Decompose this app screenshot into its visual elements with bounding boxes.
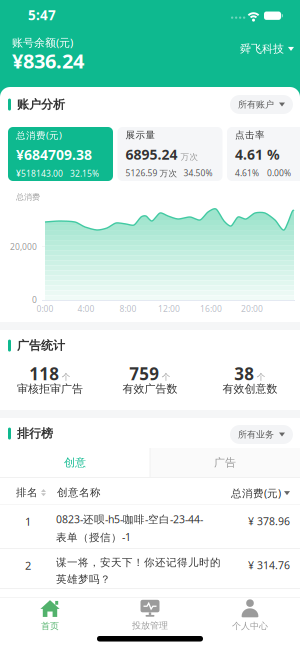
staticText: 个: [62, 371, 71, 382]
staticText: 广告统计: [17, 338, 65, 353]
button[interactable]: 所有账户: [230, 95, 293, 114]
staticText: 账户分析: [17, 97, 65, 112]
staticText: 审核拒审广告: [17, 382, 83, 396]
staticText: 0: [32, 294, 37, 306]
staticText: 16:00: [200, 303, 222, 315]
button[interactable]: 广告: [150, 448, 300, 477]
staticText: 排行榜: [17, 426, 53, 441]
staticText: 0823-还呗-h5-咖啡-空白-23-44-: [56, 512, 203, 526]
staticText: 点击率: [235, 129, 265, 141]
staticText: ¥836.24: [12, 47, 84, 74]
button[interactable]: 2: [0, 549, 300, 593]
staticText: 5126.59 万次 34.50%: [125, 167, 212, 179]
staticText: 展示量: [125, 129, 155, 141]
staticText: 32.15%: [70, 168, 99, 179]
staticText: 账号余额(元): [12, 35, 73, 50]
staticText: 0:00: [36, 303, 53, 315]
staticText: 所有账户: [238, 99, 274, 110]
button[interactable]: 展示量: [117, 127, 222, 181]
staticText: 总消费(元): [231, 486, 281, 500]
staticText: ¥684709.38: [16, 145, 92, 164]
staticText: 创意名称: [57, 486, 101, 499]
staticText: 广告: [214, 456, 236, 469]
staticText: 投放管理: [132, 620, 168, 631]
staticText: 舜飞科技: [240, 42, 284, 56]
staticText: ¥ 378.96: [248, 514, 290, 528]
button[interactable]: 创意: [0, 448, 150, 477]
staticText: 总消费(元): [16, 129, 62, 142]
button[interactable]: 总消费(元): [8, 127, 113, 181]
staticText: 20,000: [10, 241, 37, 253]
staticText: 759: [129, 362, 159, 385]
staticText: 首页: [41, 620, 59, 632]
staticText: 排名: [16, 486, 38, 499]
staticText: 个人中心: [232, 620, 268, 632]
staticText: 总消费: [16, 192, 40, 202]
staticText: 12:00: [158, 303, 180, 315]
staticText: 个: [257, 371, 266, 382]
button[interactable]: 投放管理: [100, 599, 200, 632]
staticText: ¥ 314.76: [248, 558, 290, 572]
button[interactable]: 1: [0, 505, 300, 548]
staticText: 英雄梦吗？: [56, 573, 111, 586]
staticText: 表单（授信）-1: [56, 530, 131, 544]
button[interactable]: 总消费(元): [231, 486, 290, 500]
staticText: 所有业务: [238, 429, 274, 440]
staticText: 万次: [180, 151, 198, 162]
staticText: 谋一将，安天下！你还记得儿时的: [56, 556, 221, 569]
staticText: 个: [162, 371, 171, 382]
staticText: ¥518143.00: [16, 168, 63, 179]
staticText: 1: [25, 514, 31, 529]
staticText: 8:00: [119, 303, 136, 315]
staticText: 118: [29, 362, 59, 385]
staticText: 4.61% 0.00%: [235, 167, 291, 179]
staticText: 38: [234, 362, 254, 385]
button[interactable]: 舜飞科技: [240, 42, 294, 56]
staticText: 4:00: [77, 303, 94, 315]
button[interactable]: 点击率: [227, 127, 300, 181]
staticText: 2: [25, 558, 31, 573]
button[interactable]: 所有业务: [230, 425, 293, 444]
staticText: 创意: [64, 456, 86, 469]
staticText: 有效广告数: [122, 382, 177, 396]
staticText: 5:47: [28, 6, 56, 24]
staticText: 20:00: [241, 303, 263, 315]
staticText: 有效创意数: [222, 382, 277, 396]
button[interactable]: 个人中心: [200, 599, 300, 632]
staticText: 6895.24: [125, 145, 177, 164]
staticText: 4.61 %: [235, 145, 280, 164]
button[interactable]: 首页: [0, 599, 100, 632]
